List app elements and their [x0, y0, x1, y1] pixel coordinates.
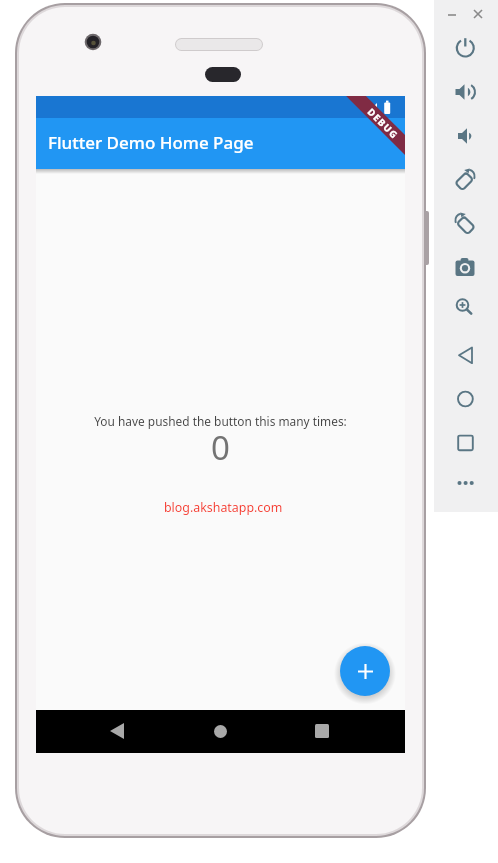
button[interactable] — [449, 467, 481, 499]
button[interactable] — [449, 208, 481, 240]
staticText: DEBUG — [365, 105, 401, 142]
button[interactable] — [449, 164, 481, 196]
button[interactable] — [470, 4, 488, 22]
button[interactable]: blog.akshatapp.com — [164, 499, 283, 516]
staticText: You have pushed the button this many tim… — [36, 413, 405, 429]
button[interactable] — [444, 4, 462, 22]
button[interactable] — [449, 120, 481, 152]
staticText: 0 — [36, 425, 405, 470]
button[interactable] — [449, 292, 481, 324]
button[interactable] — [449, 76, 481, 108]
button[interactable] — [306, 715, 338, 747]
button[interactable] — [449, 427, 481, 459]
staticText: blog.akshatapp.com — [164, 499, 283, 516]
staticText: Flutter Demo Home Page — [48, 131, 254, 154]
button[interactable] — [204, 715, 236, 747]
button[interactable] — [449, 339, 481, 371]
button[interactable] — [449, 32, 481, 64]
button[interactable] — [449, 383, 481, 415]
button[interactable] — [101, 715, 133, 747]
button[interactable] — [449, 251, 481, 283]
button[interactable] — [340, 646, 390, 696]
